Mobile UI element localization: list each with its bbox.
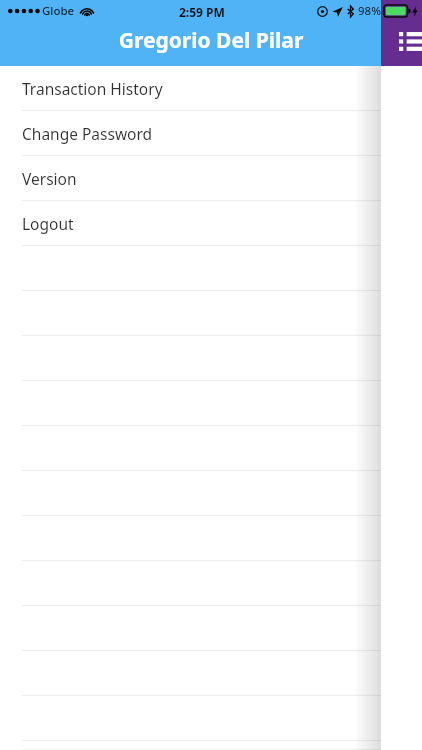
staticText: 98% [358,3,381,19]
staticText: Globe [42,3,75,19]
button[interactable]: Change Password [0,111,422,156]
button[interactable]: Menu [381,0,422,66]
button[interactable]: Transaction History [0,66,422,111]
button[interactable]: Logout [0,201,422,246]
staticText: 2:59 PM [179,4,225,20]
button[interactable]: Version [0,156,422,201]
staticText: Gregorio Del Pilar [0,26,422,55]
staticText: Logout [22,213,74,234]
staticText: Change Password [22,123,153,144]
staticText: Transaction History [22,78,163,99]
staticText: Version [22,168,77,189]
